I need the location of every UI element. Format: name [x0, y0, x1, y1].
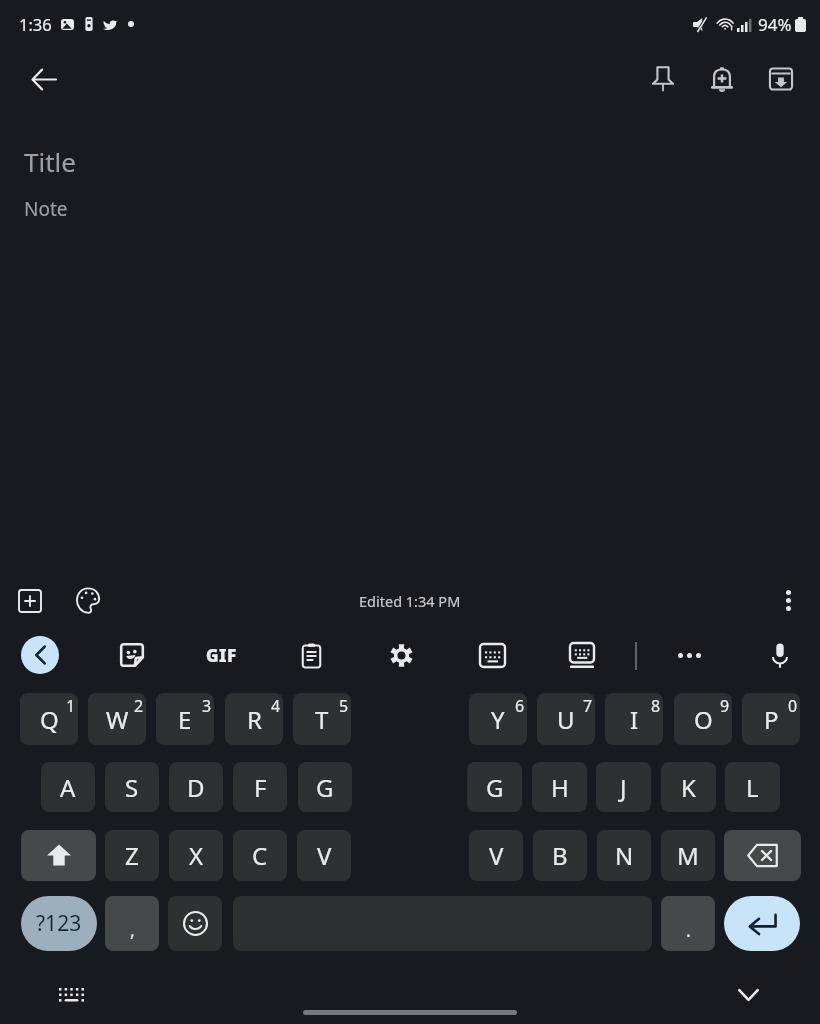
staticText: 0	[788, 695, 798, 717]
staticText: K	[681, 771, 696, 804]
staticText: 1:36	[19, 13, 52, 35]
button[interactable]: R	[225, 693, 283, 745]
button[interactable]: Add attachment	[7, 578, 52, 623]
button[interactable]: V	[297, 830, 351, 881]
button[interactable]: G	[298, 762, 352, 812]
staticText: D	[187, 771, 205, 804]
staticText: J	[620, 771, 627, 804]
button[interactable]: Enter	[724, 896, 800, 951]
staticText: .	[686, 918, 691, 943]
button[interactable]: Shift	[21, 830, 96, 881]
staticText: I	[630, 703, 639, 736]
staticText: E	[178, 703, 192, 736]
button[interactable]: Hide keyboard	[50, 974, 92, 1016]
button[interactable]: K	[661, 762, 716, 812]
button[interactable]: GIF	[197, 633, 245, 678]
staticText: Z	[125, 839, 139, 872]
staticText: ,	[130, 918, 135, 943]
button[interactable]: M	[661, 830, 715, 881]
staticText: 8	[651, 695, 661, 717]
button[interactable]: E	[156, 693, 214, 745]
button[interactable]: Settings	[379, 633, 423, 677]
button[interactable]: V	[469, 830, 523, 881]
staticText: C	[252, 839, 268, 872]
button[interactable]: H	[532, 762, 587, 812]
button[interactable]: .	[661, 896, 715, 951]
staticText: 6	[515, 695, 525, 717]
staticText: Edited 1:34 PM	[359, 591, 461, 611]
button[interactable]: Clipboard	[289, 633, 333, 677]
staticText: P	[764, 703, 779, 736]
staticText: A	[60, 771, 76, 804]
button[interactable]: Voice input	[758, 633, 802, 677]
staticText: F	[254, 771, 267, 804]
button[interactable]: L	[725, 762, 780, 812]
button[interactable]: More toolbar options	[667, 633, 711, 677]
staticText: Q	[40, 703, 59, 736]
staticText: 1	[66, 695, 76, 717]
staticText: H	[551, 771, 569, 804]
button[interactable]: Expand toolbar	[21, 636, 59, 674]
staticText: Note	[24, 196, 68, 222]
button[interactable]: G	[467, 762, 522, 812]
button[interactable]: O	[674, 693, 732, 745]
button[interactable]: Y	[469, 693, 527, 745]
staticText: 7	[583, 695, 593, 717]
staticText: GIF	[206, 644, 237, 667]
staticText: G	[316, 771, 334, 804]
button[interactable]: N	[597, 830, 651, 881]
button[interactable]: Symbols	[21, 896, 97, 951]
staticText: V	[317, 839, 332, 872]
button[interactable]: Close keyboard	[727, 974, 769, 1016]
staticText: 9	[720, 695, 730, 717]
button[interactable]: More options	[766, 578, 811, 623]
staticText: S	[125, 771, 139, 804]
button[interactable]: Z	[105, 830, 159, 881]
staticText: U	[557, 703, 575, 736]
button[interactable]: Pin note	[637, 53, 689, 105]
button[interactable]: One-handed keyboard	[470, 633, 514, 677]
button[interactable]: Change colour	[65, 578, 110, 623]
staticText: N	[615, 839, 634, 872]
button[interactable]: Navigate back	[20, 55, 68, 103]
button[interactable]: X	[169, 830, 223, 881]
button[interactable]: Emoji	[168, 896, 222, 951]
staticText: X	[189, 839, 204, 872]
button[interactable]: U	[537, 693, 595, 745]
staticText: B	[552, 839, 568, 872]
button[interactable]: J	[596, 762, 651, 812]
staticText: Title	[24, 144, 76, 179]
staticText: O	[694, 703, 713, 736]
staticText: M	[677, 839, 699, 872]
button[interactable]: A	[41, 762, 95, 812]
staticText: W	[106, 703, 129, 736]
button[interactable]: Q	[20, 693, 78, 745]
button[interactable]: C	[233, 830, 287, 881]
button[interactable]: W	[88, 693, 146, 745]
button[interactable]: Add reminder	[696, 53, 748, 105]
button[interactable]: P	[742, 693, 800, 745]
button[interactable]: Backspace	[724, 830, 801, 881]
staticText: R	[247, 703, 262, 736]
staticText: G	[486, 771, 504, 804]
button[interactable]: B	[533, 830, 587, 881]
button[interactable]: Archive	[755, 53, 807, 105]
button[interactable]: F	[233, 762, 287, 812]
staticText: 3	[202, 695, 212, 717]
button[interactable]: ,	[105, 896, 159, 951]
staticText: L	[746, 771, 759, 804]
staticText: T	[315, 703, 329, 736]
staticText: 94%	[758, 13, 792, 36]
button[interactable]: I	[605, 693, 663, 745]
button[interactable]: Floating keyboard	[560, 633, 604, 677]
staticText: 5	[339, 695, 349, 717]
button[interactable]: Stickers	[110, 633, 154, 677]
button[interactable]: T	[293, 693, 351, 745]
button[interactable]: D	[169, 762, 223, 812]
staticText: 4	[271, 695, 281, 717]
staticText: V	[489, 839, 504, 872]
staticText: ?123	[36, 909, 82, 938]
button[interactable]: S	[105, 762, 159, 812]
staticText: Y	[491, 703, 505, 736]
